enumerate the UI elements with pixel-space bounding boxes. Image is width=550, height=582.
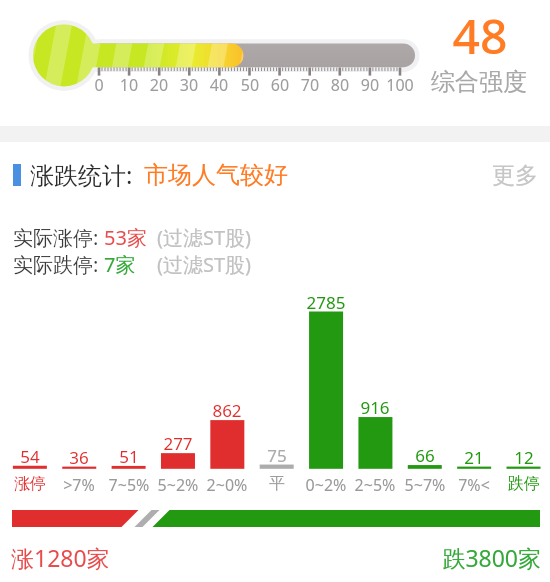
staticText: 66 [390, 444, 460, 467]
staticText: 2785 [291, 291, 361, 314]
staticText: 实际跌停: [13, 251, 104, 278]
staticText: 实际涨停: [13, 224, 104, 251]
staticText: 277 [143, 432, 213, 455]
staticText: 30 [159, 74, 219, 96]
staticText: 100 [370, 74, 430, 96]
staticText: 10 [99, 74, 159, 96]
staticText: 综合强度 [419, 67, 539, 97]
staticText: 75 [242, 444, 312, 467]
staticText: 跌3800家 [428, 542, 541, 573]
staticText: 市场人气较好 [144, 160, 288, 190]
staticText: 53家 [104, 224, 147, 251]
staticText: 2~0% [192, 474, 262, 496]
staticText: 5~7% [390, 474, 460, 496]
staticText: 60 [250, 74, 310, 96]
staticText: 36 [44, 446, 114, 469]
staticText: 涨跌统计: [30, 158, 133, 191]
staticText: 70 [280, 74, 340, 96]
staticText: 跌停 [489, 474, 550, 494]
staticText: 21 [439, 446, 509, 469]
staticText: 916 [340, 396, 410, 419]
staticText: 20 [129, 74, 189, 96]
staticText: 平 [242, 474, 312, 494]
staticText: 862 [192, 399, 262, 422]
staticText: 0~2% [291, 474, 361, 496]
staticText: 48 [420, 3, 540, 68]
staticText: 54 [0, 445, 65, 468]
staticText: 50 [220, 74, 280, 96]
staticText: 51 [94, 445, 164, 468]
staticText: 12 [489, 446, 550, 469]
staticText: 涨停 [0, 474, 65, 494]
staticText: 80 [310, 74, 370, 96]
staticText: 涨1280家 [11, 542, 110, 573]
staticText: (过滤ST股) [157, 224, 252, 251]
button[interactable]: 更多 [468, 151, 550, 197]
staticText: 7家 [104, 251, 136, 278]
staticText: (过滤ST股) [157, 251, 252, 278]
staticText: 更多 [492, 161, 538, 187]
staticText: 7~5% [94, 474, 164, 496]
staticText: 40 [189, 74, 249, 96]
staticText: 90 [340, 74, 400, 96]
staticText: 7%< [439, 474, 509, 496]
staticText: >7% [44, 474, 114, 496]
staticText: 5~2% [143, 474, 213, 496]
staticText: 0 [69, 74, 129, 96]
staticText: 2~5% [340, 474, 410, 496]
